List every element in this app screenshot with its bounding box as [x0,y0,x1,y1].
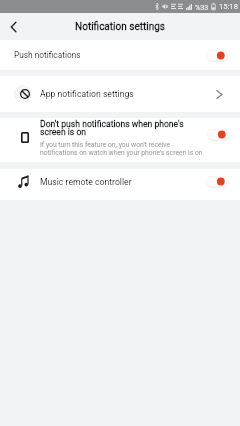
staticText: Notification settings [75,21,165,33]
button[interactable]: Toggle [207,129,230,140]
staticText: %33 [195,3,209,11]
button[interactable]: Push notifications [0,40,240,70]
staticText: Don't push notifications when phone's sc… [40,119,186,137]
button[interactable]: Back [0,13,28,40]
other: Open [215,87,229,101]
staticText: Push notifications [14,50,206,60]
button[interactable]: Toggle [206,50,229,61]
staticText: Music remote controller [40,177,206,187]
staticText: App notification settings [40,89,215,99]
button[interactable]: Music remote controller [0,169,240,194]
button[interactable]: App notification settings [0,76,240,112]
staticText: 15:18 [219,2,238,11]
button[interactable]: Don't push notifications when phone's sc… [0,118,240,162]
button[interactable]: Toggle [206,176,229,187]
staticText: If you turn this feature on, you won't r… [40,141,206,157]
